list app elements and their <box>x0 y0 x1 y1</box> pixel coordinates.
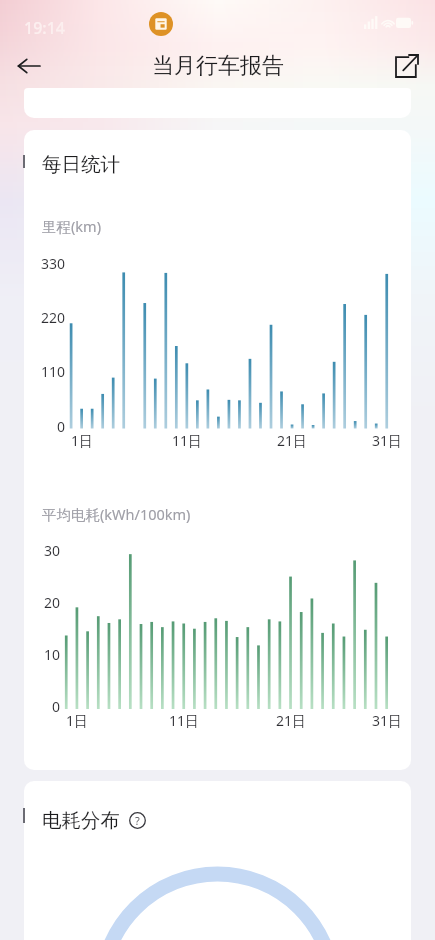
staticText: 0 <box>24 417 65 436</box>
staticText: 31日 <box>363 431 411 450</box>
staticText: 11日 <box>160 711 208 730</box>
staticText: 21日 <box>268 431 316 450</box>
staticText: 220 <box>24 308 65 327</box>
staticText: 19:14 <box>24 17 65 39</box>
staticText: 31日 <box>363 711 411 730</box>
button[interactable]: Help <box>129 812 146 829</box>
button[interactable]: Share <box>385 44 429 88</box>
staticText: 1日 <box>58 431 106 450</box>
staticText: 21日 <box>267 711 315 730</box>
staticText: 每日统计 <box>42 152 120 177</box>
staticText: 电耗分布 <box>42 808 120 833</box>
staticText: 11日 <box>163 431 211 450</box>
staticText: 1日 <box>53 711 101 730</box>
staticText: 110 <box>24 362 65 381</box>
staticText: 当月行车报告 <box>152 52 284 80</box>
staticText: 里程(km) <box>42 216 102 236</box>
staticText: 20 <box>24 593 60 612</box>
staticText: 平均电耗(kWh/100km) <box>42 504 191 524</box>
staticText: 30 <box>24 541 60 560</box>
staticText: 330 <box>24 254 65 273</box>
staticText: 0 <box>24 697 60 716</box>
staticText: ? <box>135 813 140 828</box>
staticText: 10 <box>24 645 60 664</box>
button[interactable]: Back <box>6 44 50 88</box>
